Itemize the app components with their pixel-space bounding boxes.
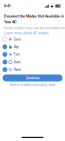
button[interactable]: Heat (0, 66, 65, 73)
staticText: Auto (14, 60, 21, 64)
staticText: Select modes manually later (9, 83, 55, 87)
staticText: Deselect the Modes Not Available in (4, 14, 64, 18)
staticText: Dry (14, 45, 19, 49)
staticText: 9:41 (4, 4, 10, 8)
staticText: Learn more about AC modes (4, 31, 49, 35)
staticText: Fan (14, 52, 20, 56)
button[interactable]: Select modes manually later (0, 82, 65, 88)
button[interactable]: Dry (0, 43, 65, 51)
staticText: Some modes may not be available on your … (4, 26, 65, 30)
staticText: Continue (25, 76, 39, 80)
staticText: Cool (14, 37, 21, 41)
button[interactable]: Cool (0, 35, 65, 43)
staticText: Heat (14, 68, 21, 72)
staticText: Your AC (4, 20, 17, 24)
button[interactable]: Continue (2, 74, 62, 81)
button[interactable]: Auto (0, 58, 65, 66)
button[interactable]: Fan (0, 51, 65, 58)
